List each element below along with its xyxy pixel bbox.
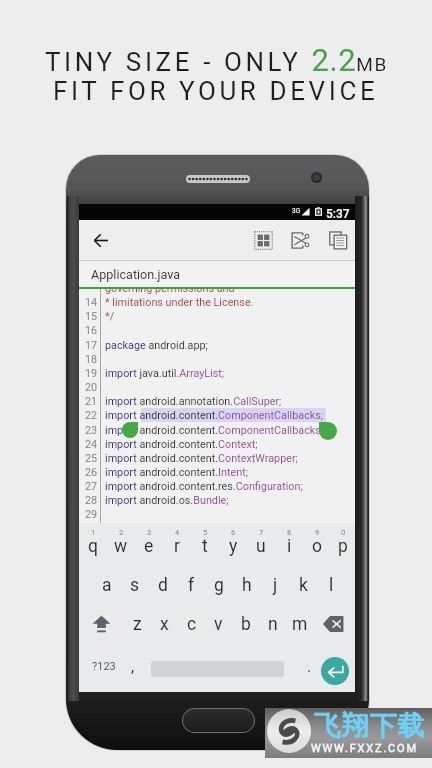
button[interactable]: t bbox=[191, 527, 219, 565]
staticText: p bbox=[338, 536, 348, 557]
staticText: q bbox=[88, 536, 98, 557]
staticText: import android.content.ComponentCallback… bbox=[105, 409, 324, 422]
staticText: 25 bbox=[85, 452, 98, 465]
button[interactable]: ?123 bbox=[83, 646, 125, 686]
staticText: import android.annotation.CallSuper; bbox=[105, 395, 282, 408]
staticText: a bbox=[102, 575, 112, 596]
staticText: 14 bbox=[85, 296, 98, 309]
button[interactable]: Back bbox=[85, 220, 117, 260]
button[interactable]: i bbox=[275, 527, 303, 565]
staticText: WWW.FXXZ.COM bbox=[311, 742, 418, 755]
staticText: * limitations under the License. bbox=[105, 296, 254, 309]
button[interactable]: x bbox=[151, 605, 178, 643]
button[interactable]: c bbox=[178, 605, 205, 643]
button[interactable]: Backspace bbox=[313, 605, 355, 643]
staticText: 1 bbox=[91, 528, 96, 537]
staticText: i bbox=[287, 536, 292, 557]
staticText: 16 bbox=[85, 324, 98, 337]
button[interactable]: p bbox=[331, 527, 355, 565]
button[interactable]: y bbox=[219, 527, 247, 565]
staticText: 19 bbox=[85, 367, 98, 380]
staticText: 28 bbox=[85, 494, 98, 507]
button[interactable]: Copy bbox=[324, 220, 352, 260]
button[interactable]: s bbox=[121, 566, 149, 604]
button[interactable]: j bbox=[261, 566, 289, 604]
staticText: package android.app; bbox=[105, 339, 208, 352]
staticText: 15 bbox=[85, 310, 98, 323]
staticText: o bbox=[312, 536, 322, 557]
staticText: ?123 bbox=[92, 660, 116, 673]
staticText: g bbox=[214, 575, 224, 596]
staticText: h bbox=[242, 575, 252, 596]
button[interactable]: d bbox=[149, 566, 177, 604]
staticText: governing permissions and bbox=[105, 289, 235, 295]
button[interactable]: o bbox=[303, 527, 331, 565]
staticText: import android.content.Context; bbox=[105, 438, 258, 451]
staticText: 20 bbox=[85, 381, 98, 394]
button[interactable]: m bbox=[286, 605, 313, 643]
staticText: m bbox=[292, 614, 308, 635]
button[interactable]: Selection start handle bbox=[122, 422, 138, 438]
button[interactable]: q bbox=[79, 527, 107, 565]
staticText: 9 bbox=[315, 528, 320, 537]
staticText: f bbox=[188, 575, 195, 596]
staticText: 18 bbox=[85, 353, 98, 366]
button[interactable]: Select all bbox=[249, 220, 277, 260]
staticText: 22 bbox=[85, 409, 98, 422]
button[interactable]: k bbox=[289, 566, 317, 604]
staticText: 飞翔下载 bbox=[313, 709, 425, 743]
staticText: Application.java bbox=[91, 267, 181, 282]
button[interactable]: r bbox=[163, 527, 191, 565]
staticText: c bbox=[187, 614, 197, 635]
staticText: r bbox=[174, 536, 180, 557]
staticText: 21 bbox=[85, 395, 98, 408]
staticText: t bbox=[202, 536, 208, 557]
staticText: import android.os.Bundle; bbox=[105, 494, 229, 507]
staticText: import android.content.ComponentCallback… bbox=[105, 424, 321, 437]
button[interactable]: Cut bbox=[286, 220, 314, 260]
button[interactable]: l bbox=[317, 566, 345, 604]
staticText: 23 bbox=[85, 424, 98, 437]
button[interactable]: Shift bbox=[79, 605, 124, 643]
staticText: k bbox=[299, 575, 308, 596]
staticText: FIT FOR YOUR DEVICE bbox=[53, 76, 379, 106]
staticText: z bbox=[133, 614, 142, 635]
button[interactable]: g bbox=[205, 566, 233, 604]
staticText: l bbox=[329, 575, 334, 596]
button[interactable]: a bbox=[93, 566, 121, 604]
staticText: import android.content.ContextWrapper; bbox=[105, 452, 298, 465]
button[interactable]: f bbox=[177, 566, 205, 604]
staticText: d bbox=[158, 575, 168, 596]
staticText: 2 bbox=[119, 528, 124, 537]
staticText: 0 bbox=[341, 528, 346, 537]
button[interactable]: Application.java bbox=[79, 261, 355, 287]
button[interactable]: e bbox=[135, 527, 163, 565]
button[interactable]: n bbox=[259, 605, 286, 643]
button[interactable]: Enter bbox=[315, 650, 355, 692]
button[interactable]: w bbox=[107, 527, 135, 565]
staticText: b bbox=[241, 614, 251, 635]
staticText: x bbox=[160, 614, 169, 635]
staticText: j bbox=[273, 575, 278, 596]
staticText: e bbox=[144, 536, 154, 557]
button[interactable]: , bbox=[121, 646, 145, 686]
staticText: 5:37 bbox=[326, 207, 350, 221]
staticText: 29 bbox=[85, 508, 98, 521]
staticText: */ bbox=[105, 310, 115, 323]
button[interactable]: Space bbox=[147, 649, 288, 689]
button[interactable]: z bbox=[124, 605, 151, 643]
staticText: n bbox=[268, 614, 278, 635]
button[interactable]: b bbox=[232, 605, 259, 643]
staticText: import android.content.res.Configuration… bbox=[105, 480, 303, 493]
staticText: 7 bbox=[259, 528, 264, 537]
staticText: import android.content.Intent; bbox=[105, 466, 248, 479]
button[interactable]: u bbox=[247, 527, 275, 565]
button[interactable]: . bbox=[297, 646, 321, 686]
button[interactable]: h bbox=[233, 566, 261, 604]
staticText: 3 bbox=[147, 528, 152, 537]
button[interactable]: v bbox=[205, 605, 232, 643]
staticText: 5 bbox=[203, 528, 208, 537]
button[interactable]: Selection end handle bbox=[319, 422, 337, 440]
staticText: 17 bbox=[85, 339, 98, 352]
staticText: 24 bbox=[85, 438, 98, 451]
